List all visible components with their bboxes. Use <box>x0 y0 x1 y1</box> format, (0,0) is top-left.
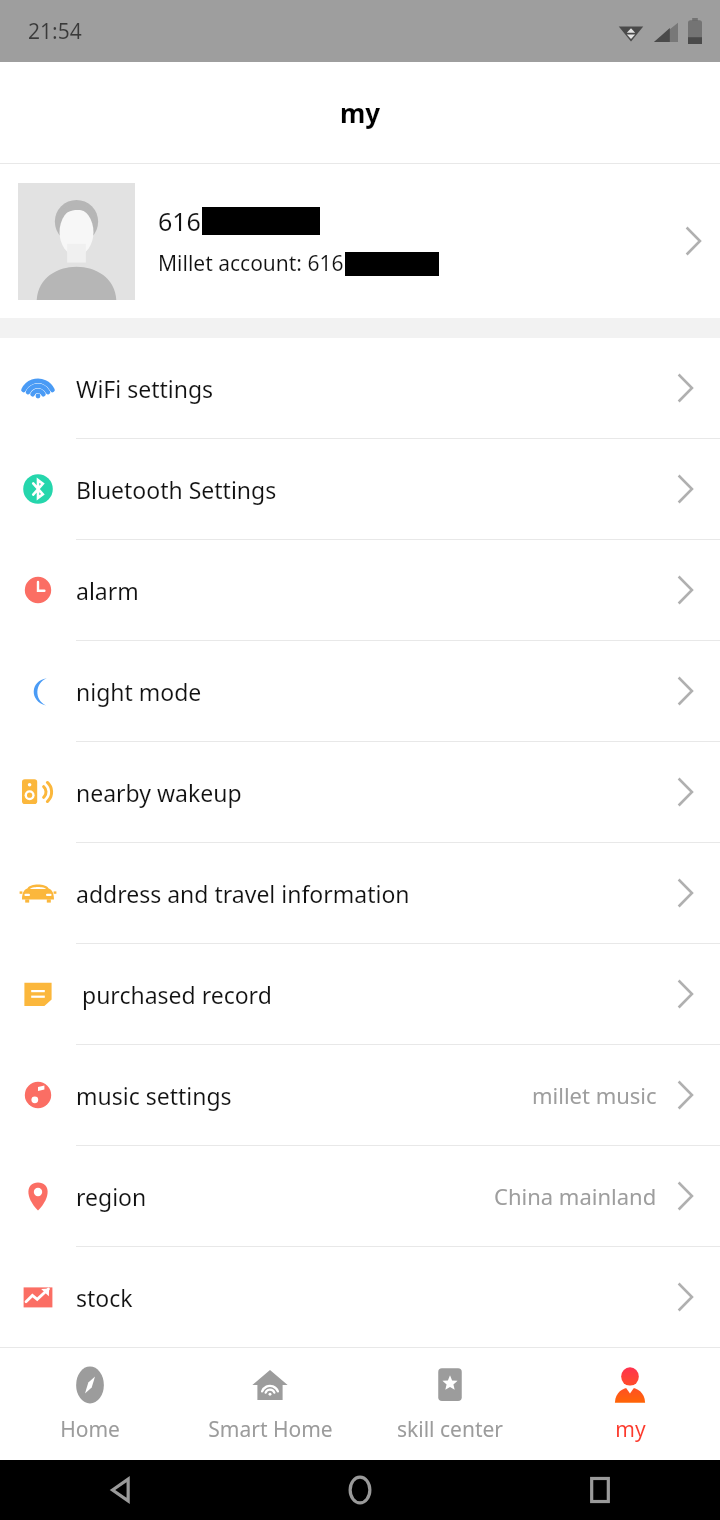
button[interactable]: nearby wakeup <box>0 742 720 842</box>
staticText: WiFi settings <box>76 373 677 404</box>
staticText: night mode <box>76 676 677 707</box>
staticText: alarm <box>76 575 677 606</box>
other: Home <box>343 1473 377 1507</box>
button[interactable]: WiFi settings <box>0 338 720 438</box>
button[interactable]: purchased record <box>0 944 720 1044</box>
staticText: music settings <box>76 1080 532 1111</box>
button[interactable]: stock <box>0 1247 720 1347</box>
button[interactable]: Home <box>0 1348 180 1460</box>
button[interactable]: music settings <box>0 1045 720 1145</box>
button[interactable]: Bluetooth Settings <box>0 439 720 539</box>
other: Recents <box>584 1474 616 1506</box>
staticText: skill center <box>397 1415 503 1444</box>
button[interactable]: skill center <box>360 1348 540 1460</box>
staticText: millet music <box>532 1080 657 1110</box>
staticText: my <box>340 95 381 130</box>
button[interactable]: alarm <box>0 540 720 640</box>
staticText: 21:54 <box>28 17 82 46</box>
staticText: my <box>615 1415 646 1444</box>
button[interactable]: region <box>0 1146 720 1246</box>
button[interactable]: night mode <box>0 641 720 741</box>
staticText: Smart Home <box>208 1415 333 1444</box>
staticText: region <box>76 1181 494 1212</box>
button[interactable]: Smart Home <box>180 1348 360 1460</box>
staticText: Bluetooth Settings <box>76 474 677 505</box>
staticText: stock <box>76 1282 677 1313</box>
staticText: nearby wakeup <box>76 777 677 808</box>
button[interactable]: address and travel information <box>0 843 720 943</box>
staticText: purchased record <box>76 979 677 1010</box>
staticText: China mainland <box>494 1181 657 1211</box>
staticText: address and travel information <box>76 878 677 909</box>
staticText: Millet account: 616 <box>158 249 344 278</box>
button[interactable]: my <box>540 1348 720 1460</box>
staticText: Home <box>60 1415 120 1444</box>
staticText: 616 <box>158 204 201 238</box>
other: Back <box>103 1473 137 1507</box>
button[interactable]: 616 <box>0 164 720 318</box>
